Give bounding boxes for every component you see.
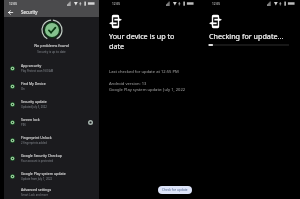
staticText: Your account is protected	[21, 159, 54, 163]
staticText: PIN	[21, 123, 26, 127]
staticText: Your device is up to date	[109, 31, 183, 51]
staticText: Smart Lock and more	[21, 193, 48, 197]
staticText: Google Security Checkup	[21, 153, 62, 158]
staticText: 2 fingerprints added	[21, 141, 47, 145]
button[interactable]: Google Play system update	[4, 167, 99, 185]
staticText: Check for update	[162, 188, 188, 192]
staticText: 12:55	[212, 2, 221, 6]
staticText: 12:55	[112, 2, 121, 6]
button[interactable]: Fingerprint Unlock	[4, 131, 99, 149]
staticText: Updated July 5, 2022	[21, 105, 47, 109]
button[interactable]: Check for update	[158, 186, 192, 194]
button[interactable]: App security	[4, 59, 99, 77]
staticText: Fingerprint Unlock	[21, 135, 52, 140]
staticText: Find My Device	[21, 81, 46, 86]
staticText: Checking for update...	[209, 31, 284, 41]
staticText: Security update	[21, 99, 47, 104]
staticText: Advanced settings	[21, 187, 52, 192]
button[interactable]: Advanced settings	[4, 185, 99, 199]
staticText: No problems found	[4, 43, 99, 48]
staticText: Security	[21, 9, 38, 15]
staticText: Android version: 13 Google Play system u…	[109, 81, 186, 92]
button[interactable]: Screen lock	[4, 113, 99, 131]
button[interactable]: Google Security Checkup	[4, 149, 99, 167]
staticText: Last checked for update at 12:55 PM	[109, 69, 179, 75]
staticText: On	[21, 87, 25, 91]
button[interactable]: Find My Device	[4, 77, 99, 95]
button[interactable]: Back	[6, 8, 15, 17]
staticText: App security	[21, 63, 42, 68]
staticText: 12:55	[9, 2, 18, 6]
button[interactable]: Security update	[4, 95, 99, 113]
button[interactable]: Screen lock settings	[86, 118, 95, 127]
staticText: Screen lock	[21, 117, 40, 122]
staticText: Play Protect scan 9:00 AM	[21, 69, 54, 73]
staticText: Google Play system update	[21, 171, 66, 176]
staticText: Security is up to date	[4, 50, 99, 54]
staticText: Update from July 1, 2022	[21, 177, 53, 181]
